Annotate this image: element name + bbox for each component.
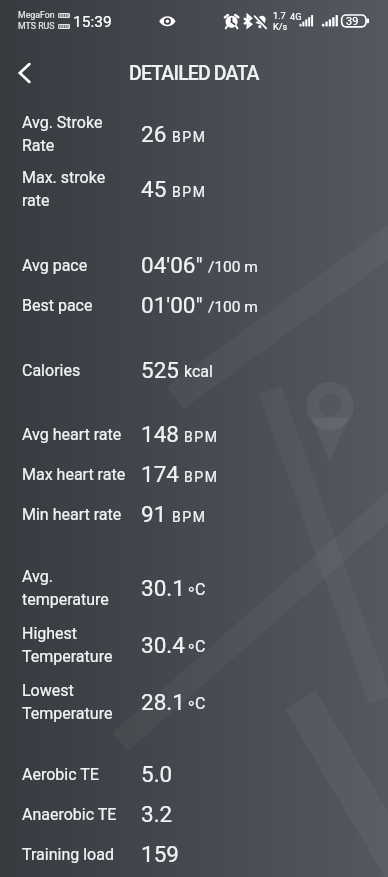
button[interactable]: Back [2,48,46,92]
button[interactable]: Max heart rate [0,454,388,494]
staticText: 30.1 [141,575,185,601]
staticText: Aerobic TE [22,765,99,784]
staticText: Training load [22,845,114,864]
staticText: kcal [184,362,213,381]
staticText: C [195,637,206,656]
staticText: Anaerobic TE [22,805,117,824]
staticText: DETAILED DATA [129,62,259,85]
staticText: 26 [141,121,167,147]
staticText: 148 [141,421,179,447]
button[interactable]: Calories [0,350,388,390]
staticText: 15:39 [73,13,112,31]
staticText: 28.1 [141,689,185,715]
staticText: C [195,580,206,599]
button[interactable]: Aerobic TE [0,754,388,794]
staticText: 174 [141,461,179,487]
button[interactable]: Avg. temperature [0,559,388,616]
staticText: 525 [141,357,179,383]
staticText: BPM [184,429,219,445]
button[interactable]: Min heart rate [0,494,388,534]
staticText: C [195,694,206,713]
staticText: 30.4 [141,632,185,658]
staticText: /100 m [208,258,258,276]
button[interactable]: Lowest Temperature [0,673,388,730]
button[interactable]: Max. stroke rate [0,161,388,216]
staticText: K/s [273,21,288,32]
staticText: Calories [22,361,81,380]
button[interactable]: Best pace [0,285,388,325]
staticText: 5.0 [141,761,173,787]
staticText: 159 [141,841,179,867]
staticText: /100 m [208,298,258,316]
button[interactable]: Avg. Stroke Rate [0,106,388,161]
button[interactable]: Highest Temperature [0,616,388,673]
staticText: Max. stroke rate [22,168,106,210]
staticText: Best pace [22,296,93,315]
staticText: Avg pace [22,256,88,275]
staticText: BPM [172,184,207,200]
staticText: BPM [184,469,219,485]
staticText: 01'00" [141,292,203,318]
button[interactable]: Training load [0,834,388,874]
staticText: Avg. Stroke Rate [22,113,103,155]
staticText: 45 [141,176,167,202]
button[interactable]: Anaerobic TE [0,794,388,834]
staticText: MTS RUS [18,21,55,31]
staticText: BPM [172,509,207,525]
staticText: 4G [290,11,302,22]
staticText: 04'06" [141,252,203,278]
button[interactable]: Avg pace [0,245,388,285]
staticText: MegaFon [18,10,55,20]
staticText: Max heart rate [22,465,126,484]
staticText: Highest Temperature [22,624,113,666]
staticText: Avg heart rate [22,425,122,444]
staticText: 1.7 [273,10,286,21]
staticText: 3.2 [141,801,173,827]
staticText: Lowest Temperature [22,681,113,723]
staticText: BPM [172,129,207,145]
staticText: Min heart rate [22,505,122,524]
staticText: 91 [141,501,167,527]
staticText: 39 [346,15,359,28]
staticText: Avg. temperature [22,567,109,609]
button[interactable]: Avg heart rate [0,414,388,454]
